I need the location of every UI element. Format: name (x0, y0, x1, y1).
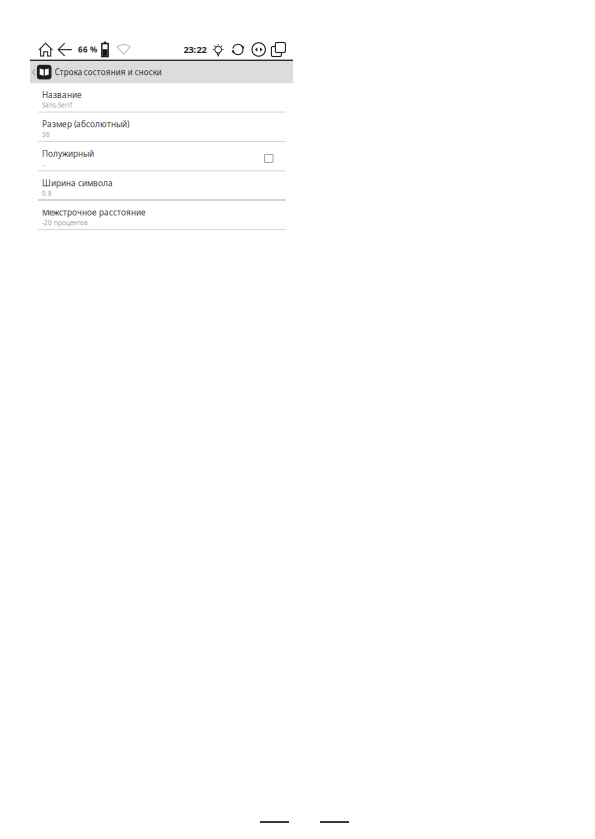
staticText: Sans-Serif (42, 101, 72, 109)
button[interactable]: Размер (абсолютный) (30, 112, 293, 142)
staticText: -20 процентов (42, 218, 88, 227)
button[interactable]: Open pages (271, 42, 285, 56)
staticText: Ширина символа (42, 177, 113, 189)
staticText: .. (42, 160, 46, 168)
staticText: 0.8 (42, 189, 52, 198)
staticText: 36 (42, 130, 50, 139)
staticText: Размер (абсолютный) (42, 118, 129, 130)
button[interactable]: Строка состояния и сноски (30, 61, 293, 83)
button[interactable]: Home (38, 42, 53, 57)
button[interactable]: Название (30, 83, 293, 112)
button[interactable]: Межстрочное расстояние (30, 201, 293, 230)
staticText: 23:22 (183, 43, 206, 56)
button[interactable]: Refresh page (231, 43, 245, 56)
button[interactable]: Brightness (212, 43, 224, 56)
staticText: 66 % (78, 44, 97, 55)
button[interactable]: Page navigation (252, 43, 265, 56)
button[interactable]: Полужирный (30, 142, 293, 171)
button[interactable]: Ширина символа (30, 171, 293, 201)
staticText: Строка состояния и сноски (55, 67, 162, 78)
staticText: Межстрочное расстояние (42, 207, 146, 218)
button[interactable]: Back (57, 42, 73, 57)
staticText: Название (42, 89, 82, 100)
staticText: Полужирный (42, 148, 94, 159)
